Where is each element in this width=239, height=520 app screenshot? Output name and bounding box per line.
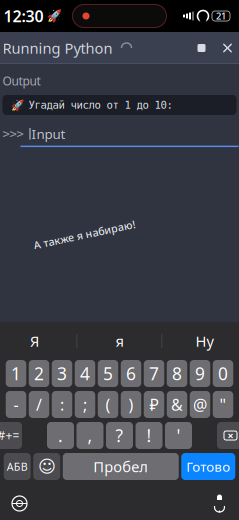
staticText: 🚀 — [46, 9, 61, 23]
button[interactable]: 2 — [29, 360, 49, 387]
button[interactable]: ; — [75, 391, 95, 418]
staticText: Угадай число от 1 до 10: — [28, 99, 172, 111]
button[interactable]: Ну — [162, 325, 239, 357]
staticText: ( — [105, 394, 110, 415]
button[interactable]: / — [29, 391, 49, 418]
staticText: @ — [193, 394, 207, 415]
button[interactable]: 1 — [6, 360, 26, 387]
staticText: 0 — [218, 362, 228, 385]
staticText: АБВ — [7, 459, 28, 474]
staticText: : — [60, 394, 64, 415]
button[interactable]: - — [6, 391, 26, 418]
staticText: 4 — [80, 362, 90, 385]
button[interactable]: Dictate — [202, 488, 236, 518]
button[interactable]: 5 — [98, 360, 118, 387]
button[interactable]: Готово — [181, 453, 235, 480]
button[interactable]: Close — [214, 33, 239, 63]
button[interactable]: Stop — [188, 33, 214, 63]
staticText: - — [13, 394, 18, 415]
button[interactable]: ? — [106, 422, 133, 449]
staticText: × — [227, 428, 233, 443]
staticText: " — [219, 394, 226, 415]
staticText: Я — [30, 331, 39, 351]
staticText: Output — [2, 73, 40, 89]
button[interactable]: 8 — [167, 360, 187, 387]
button[interactable]: Change keyboard language — [2, 488, 36, 518]
staticText: А также я набираю! — [32, 227, 136, 242]
button[interactable]: 6 — [121, 360, 141, 387]
staticText: 21 — [216, 10, 226, 22]
staticText: ' — [176, 424, 180, 447]
button[interactable]: АБВ — [4, 453, 31, 480]
staticText: . — [58, 424, 63, 447]
staticText: 1 — [11, 362, 21, 385]
button[interactable]: ' — [165, 422, 192, 449]
button[interactable]: ! — [135, 422, 162, 449]
button[interactable]: #+= — [0, 422, 22, 449]
staticText: Пробел — [93, 457, 148, 476]
button[interactable]: ₽ — [144, 391, 164, 418]
button[interactable]: @ — [190, 391, 210, 418]
staticText: 2 — [34, 362, 44, 385]
staticText: / — [36, 394, 42, 415]
button[interactable]: ( — [98, 391, 118, 418]
staticText: & — [171, 394, 183, 415]
staticText: 7 — [149, 362, 159, 385]
button[interactable]: Delete — [217, 422, 239, 449]
staticText: Input — [31, 125, 65, 143]
staticText: ; — [83, 394, 87, 415]
button[interactable]: Пробел — [63, 453, 179, 480]
button[interactable]: & — [167, 391, 187, 418]
staticText: 6 — [126, 362, 136, 385]
staticText: 3 — [57, 362, 67, 385]
button[interactable]: , — [76, 422, 103, 449]
staticText: Готово — [186, 458, 230, 475]
staticText: ? — [115, 424, 123, 447]
button[interactable]: " — [213, 391, 233, 418]
staticText: 5 — [103, 362, 113, 385]
staticText: ) — [128, 394, 133, 415]
staticText: Running Python — [2, 38, 112, 58]
button[interactable]: : — [52, 391, 72, 418]
staticText: , — [87, 424, 92, 447]
staticText: ! — [146, 424, 151, 447]
staticText: 12:30 — [3, 5, 43, 27]
staticText: >>> — [2, 127, 23, 141]
staticText: ₽ — [149, 394, 158, 415]
button[interactable]: 3 — [52, 360, 72, 387]
button[interactable]: 9 — [190, 360, 210, 387]
staticText: 8 — [172, 362, 182, 385]
button[interactable]: Я — [0, 325, 76, 357]
button[interactable]: я — [77, 325, 161, 357]
staticText: ☺ — [38, 457, 56, 476]
button[interactable]: Emoji — [33, 453, 60, 480]
staticText: 🚀 — [10, 99, 23, 111]
button[interactable]: . — [47, 422, 74, 449]
button[interactable]: 7 — [144, 360, 164, 387]
button[interactable]: 0 — [213, 360, 233, 387]
button[interactable]: ) — [121, 391, 141, 418]
button[interactable]: 4 — [75, 360, 95, 387]
staticText: #+= — [0, 427, 19, 443]
staticText: я — [115, 331, 123, 351]
staticText: Ну — [195, 331, 213, 351]
staticText: 9 — [195, 362, 205, 385]
